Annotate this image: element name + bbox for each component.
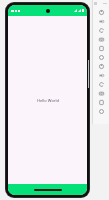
button[interactable]: Zoom (93, 53, 109, 62)
button[interactable]: Volume (93, 17, 109, 26)
staticText: Hello World (37, 98, 59, 103)
button[interactable]: Location (93, 98, 109, 107)
button[interactable]: Back (93, 62, 109, 71)
button[interactable]: Overview (93, 80, 109, 89)
button[interactable]: Rotate right (93, 35, 109, 44)
button[interactable]: Home (93, 71, 109, 80)
button[interactable]: Screenshot (93, 44, 109, 53)
button[interactable]: Power (93, 8, 109, 17)
button[interactable]: Fold (93, 89, 109, 98)
button[interactable]: Rotate left (93, 26, 109, 35)
button[interactable]: More (93, 107, 109, 116)
